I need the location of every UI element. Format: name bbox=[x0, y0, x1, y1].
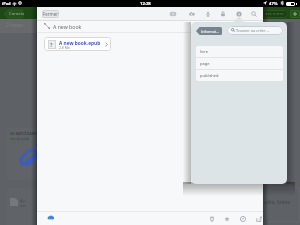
button[interactable]: Trouver ou créer ... bbox=[227, 26, 283, 35]
button[interactable]: r des notes bbox=[262, 10, 288, 18]
staticText: 47% bbox=[269, 1, 278, 7]
staticText: published bbox=[200, 73, 219, 78]
button[interactable]: Delete bbox=[208, 215, 215, 222]
staticText: Ajo bbox=[20, 198, 26, 203]
staticText: Informat... bbox=[201, 29, 219, 34]
button[interactable]: Camera bbox=[188, 10, 195, 17]
button[interactable]: Sync bbox=[47, 215, 54, 220]
button[interactable]: Fermer bbox=[42, 10, 59, 18]
staticText: A new book.epub bbox=[59, 40, 101, 47]
button[interactable]: Search bbox=[250, 10, 257, 17]
staticText: Carnets bbox=[9, 11, 25, 17]
staticText: 2 Notes bbox=[6, 22, 24, 29]
button[interactable]: Add note bbox=[290, 10, 300, 18]
staticText: marsJ.epub bbox=[10, 136, 30, 141]
staticText: (4) ABÉCÉDAIRE bbox=[10, 131, 38, 136]
staticText: page bbox=[200, 61, 210, 66]
button[interactable]: Checklist bbox=[169, 10, 176, 17]
button[interactable]: Tag bbox=[239, 215, 246, 222]
button[interactable]: Share bbox=[255, 215, 262, 222]
button[interactable]: livre bbox=[196, 46, 283, 57]
staticText: Fermer bbox=[43, 11, 58, 17]
staticText: 2.8 Mo bbox=[59, 45, 70, 50]
button[interactable]: Carnets bbox=[4, 10, 23, 18]
button[interactable]: Microphone bbox=[204, 10, 211, 17]
button[interactable]: ? bbox=[44, 37, 111, 51]
staticText: udio, faites bbox=[264, 199, 290, 206]
staticText: r des notes bbox=[262, 11, 284, 17]
staticText: des bbox=[20, 203, 26, 208]
button[interactable]: Information bbox=[235, 10, 242, 17]
staticText: Trouver ou créer ... bbox=[236, 28, 270, 33]
button[interactable]: Lock bbox=[219, 10, 226, 17]
staticText: ? bbox=[50, 41, 53, 48]
button[interactable]: Informat... bbox=[196, 27, 222, 35]
button[interactable]: published bbox=[196, 70, 283, 81]
staticText: livre bbox=[200, 49, 208, 54]
staticText: 08/03/13 bbox=[10, 141, 24, 145]
staticText: iPad bbox=[2, 1, 11, 6]
button[interactable]: Favorite bbox=[223, 215, 230, 222]
staticText: A new book bbox=[53, 23, 82, 30]
staticText: 12:28 bbox=[140, 1, 151, 7]
button[interactable]: page bbox=[196, 58, 283, 69]
